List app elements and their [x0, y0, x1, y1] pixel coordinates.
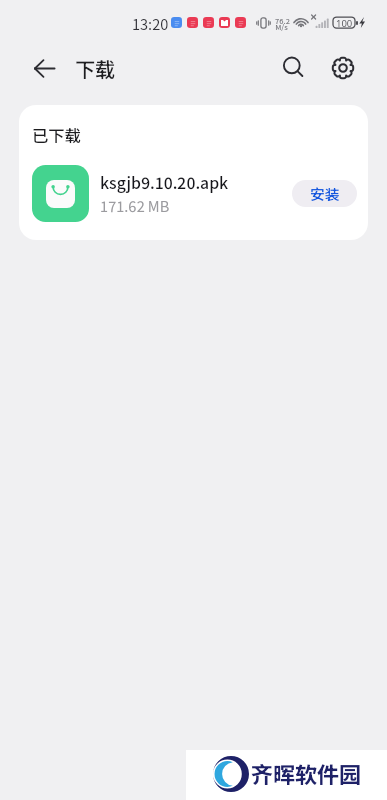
staticText: 76.2: [275, 15, 290, 26]
staticText: 安装: [310, 183, 340, 204]
staticText: ksgjb9.10.20.apk: [100, 171, 229, 194]
button[interactable]: Search: [275, 50, 312, 86]
staticText: 已下载: [32, 123, 81, 147]
staticText: 100: [336, 17, 353, 28]
staticText: M/s: [275, 21, 288, 32]
staticText: 171.62 MB: [100, 195, 170, 216]
staticText: 齐晖软件园: [251, 757, 362, 789]
button[interactable]: Settings: [324, 50, 361, 86]
button[interactable]: ksgjb9.10.20.apk: [19, 157, 368, 229]
staticText: 下载: [75, 54, 115, 83]
button[interactable]: Back: [23, 53, 65, 84]
staticText: 13:20: [132, 13, 169, 34]
button[interactable]: 安装: [292, 180, 357, 207]
